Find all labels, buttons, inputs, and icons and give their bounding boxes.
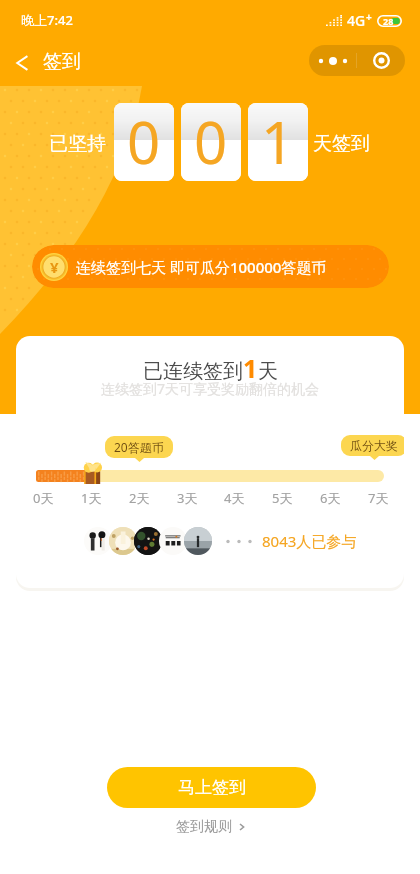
staticText: 签到 bbox=[43, 50, 81, 74]
staticText: 天签到 bbox=[313, 132, 370, 156]
staticText: 4天 bbox=[224, 489, 245, 507]
staticText: 7天 bbox=[368, 489, 389, 507]
button[interactable]: Back bbox=[8, 43, 89, 83]
staticText: 2天 bbox=[129, 489, 150, 507]
staticText: ¥ bbox=[50, 257, 59, 277]
staticText: 连续签到7天可享受奖励翻倍的机会 bbox=[16, 379, 404, 398]
staticText: 已连续签到 bbox=[143, 359, 243, 384]
staticText: 1 bbox=[243, 351, 258, 385]
button[interactable]: More bbox=[309, 45, 356, 76]
staticText: 天 bbox=[258, 359, 278, 384]
staticText: 1天 bbox=[81, 489, 102, 507]
staticText: 连续签到七天 即可瓜分100000答题币 bbox=[76, 257, 327, 277]
other: Back bbox=[16, 55, 29, 71]
staticText: 已坚持 bbox=[49, 132, 106, 156]
staticText: 28 bbox=[383, 15, 394, 27]
staticText: + bbox=[366, 10, 372, 24]
staticText: 马上签到 bbox=[178, 777, 246, 798]
button[interactable]: 马上签到 bbox=[107, 767, 316, 808]
button[interactable]: 签到规则 bbox=[172, 814, 251, 840]
staticText: 晚上7:42 bbox=[21, 11, 73, 29]
staticText: 6天 bbox=[320, 489, 341, 507]
staticText: 4G bbox=[347, 11, 366, 30]
staticText: 瓜分大奖 bbox=[350, 438, 398, 453]
staticText: 签到规则 bbox=[176, 818, 232, 836]
button[interactable]: Close bbox=[357, 45, 405, 76]
staticText: 1 bbox=[261, 103, 295, 180]
staticText: 5天 bbox=[272, 489, 293, 507]
button[interactable]: ¥ bbox=[32, 245, 389, 288]
staticText: 3天 bbox=[177, 489, 198, 507]
staticText: 0 bbox=[194, 103, 228, 180]
staticText: 0天 bbox=[33, 489, 54, 507]
staticText: 8043人已参与 bbox=[262, 531, 357, 551]
staticText: 20答题币 bbox=[114, 439, 164, 455]
staticText: 0 bbox=[127, 103, 161, 180]
